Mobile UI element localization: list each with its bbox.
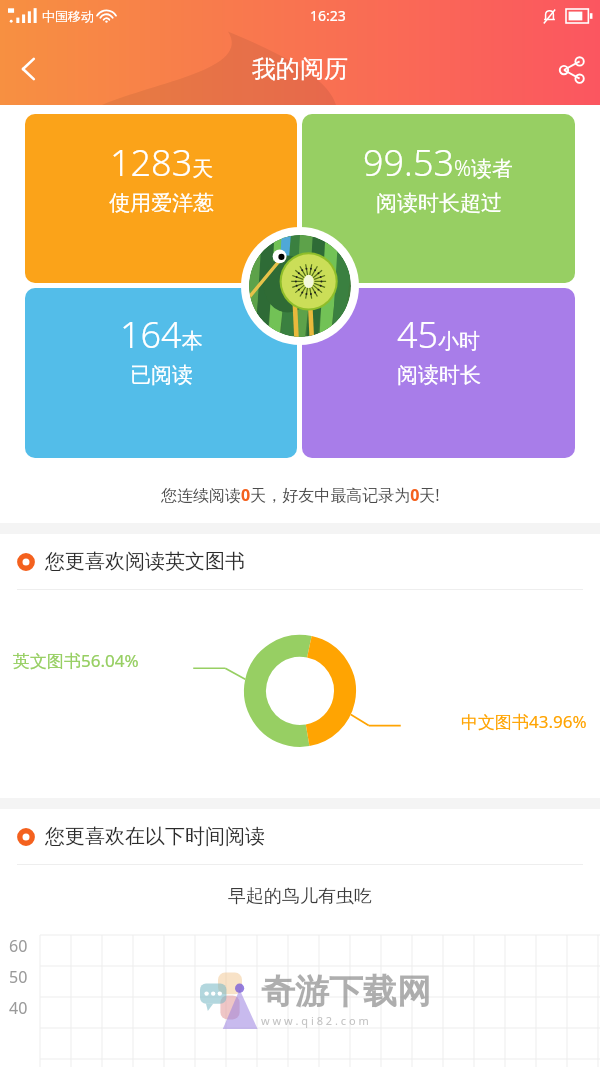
staticText: 您更喜欢在以下时间阅读 bbox=[45, 824, 265, 849]
button[interactable]: 您更喜欢阅读英文图书 bbox=[0, 534, 600, 589]
staticText: 使用爱洋葱 bbox=[109, 190, 214, 216]
staticText: 50 bbox=[9, 966, 28, 988]
staticText: 阅读时长超过 bbox=[376, 190, 502, 216]
staticText: 中文图书43.96% bbox=[461, 710, 587, 733]
button[interactable]: Back bbox=[0, 40, 58, 98]
staticText: 45小时 bbox=[397, 310, 481, 359]
staticText: 16:23 bbox=[310, 6, 346, 25]
staticText: 1283天 bbox=[110, 138, 214, 187]
button[interactable]: 45小时 bbox=[302, 288, 575, 458]
staticText: 阅读时长 bbox=[397, 362, 481, 388]
button[interactable]: Profile avatar bbox=[249, 235, 351, 337]
button[interactable]: 164本 bbox=[25, 288, 297, 458]
button[interactable]: 您更喜欢在以下时间阅读 bbox=[0, 809, 600, 864]
button[interactable]: 1283天 bbox=[25, 114, 297, 283]
staticText: 您更喜欢阅读英文图书 bbox=[45, 549, 245, 574]
staticText: 我的阅历 bbox=[58, 54, 542, 84]
staticText: 中国移动 bbox=[42, 8, 94, 24]
staticText: 40 bbox=[9, 997, 28, 1019]
button[interactable]: 99.53%读者 bbox=[302, 114, 575, 283]
staticText: 164本 bbox=[120, 310, 203, 359]
staticText: 奇游下载网 bbox=[261, 970, 431, 1013]
staticText: 早起的鸟儿有虫吃 bbox=[0, 885, 600, 908]
staticText: 99.53%读者 bbox=[363, 138, 514, 187]
staticText: 60 bbox=[9, 935, 28, 957]
button[interactable]: Share bbox=[542, 40, 600, 98]
staticText: w w w . q i 8 2 . c o m bbox=[261, 1013, 369, 1028]
staticText: 已阅读 bbox=[130, 362, 193, 388]
staticText: 英文图书56.04% bbox=[13, 649, 139, 672]
staticText: 您连续阅读0天，好友中最高记录为0天! bbox=[161, 484, 440, 506]
